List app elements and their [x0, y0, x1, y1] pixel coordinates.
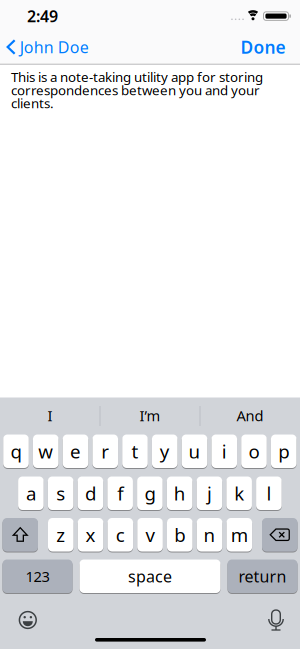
staticText: z: [56, 522, 65, 547]
button[interactable]: z: [48, 517, 74, 552]
button[interactable]: I: [2, 398, 98, 432]
button[interactable]: a: [18, 476, 44, 510]
staticText: g: [144, 481, 155, 506]
staticText: o: [248, 439, 259, 464]
staticText: t: [131, 439, 138, 464]
button[interactable]: o: [241, 434, 267, 468]
button[interactable]: [262, 517, 297, 552]
button[interactable]: j: [197, 476, 222, 510]
button[interactable]: [17, 609, 38, 630]
staticText: d: [85, 481, 96, 506]
button[interactable]: p: [271, 434, 296, 468]
staticText: w: [38, 439, 53, 464]
staticText: k: [234, 481, 244, 506]
staticText: b: [174, 522, 185, 547]
staticText: x: [85, 522, 95, 547]
staticText: y: [160, 439, 170, 464]
button[interactable]: 123: [2, 559, 72, 593]
button[interactable]: y: [152, 434, 177, 468]
staticText: This is a note-taking utility app for st…: [11, 68, 263, 86]
staticText: I’m: [139, 406, 160, 425]
staticText: r: [101, 439, 109, 464]
button[interactable]: g: [137, 476, 163, 510]
button[interactable]: e: [63, 434, 88, 468]
button[interactable]: s: [48, 476, 73, 510]
staticText: 123: [25, 566, 49, 586]
button[interactable]: c: [107, 517, 133, 552]
button[interactable]: n: [197, 517, 222, 552]
button[interactable]: l: [256, 476, 282, 510]
staticText: f: [117, 481, 123, 506]
button[interactable]: b: [167, 517, 193, 552]
staticText: i: [222, 439, 227, 464]
button[interactable]: f: [107, 476, 133, 510]
button[interactable]: [2, 517, 38, 552]
button[interactable]: i: [211, 434, 237, 468]
button[interactable]: [268, 610, 284, 631]
staticText: s: [56, 481, 65, 506]
staticText: Done: [240, 35, 285, 58]
button[interactable]: v: [137, 517, 163, 552]
staticText: h: [174, 481, 186, 506]
staticText: c: [116, 522, 125, 547]
staticText: p: [278, 439, 289, 464]
staticText: l: [266, 481, 271, 506]
staticText: I: [47, 406, 52, 425]
button[interactable]: space: [79, 559, 220, 593]
button[interactable]: And: [202, 398, 298, 432]
button[interactable]: I’m: [102, 398, 198, 432]
button[interactable]: d: [78, 476, 103, 510]
button[interactable]: h: [167, 476, 192, 510]
button[interactable]: Done: [225, 32, 285, 62]
staticText: v: [146, 522, 155, 547]
button[interactable]: r: [92, 434, 118, 468]
button[interactable]: x: [78, 517, 103, 552]
button[interactable]: k: [226, 476, 252, 510]
staticText: 2:49: [27, 5, 58, 27]
staticText: return: [238, 566, 286, 587]
staticText: clients.: [11, 94, 54, 112]
button[interactable]: return: [227, 559, 297, 593]
staticText: n: [204, 522, 216, 547]
staticText: correspondences between you and your: [11, 81, 260, 99]
staticText: j: [207, 481, 212, 506]
button[interactable]: John Doe: [8, 32, 120, 62]
button[interactable]: t: [122, 434, 148, 468]
button[interactable]: u: [182, 434, 207, 468]
staticText: a: [26, 481, 36, 506]
button[interactable]: q: [3, 434, 29, 468]
staticText: u: [188, 439, 200, 464]
button[interactable]: w: [33, 434, 59, 468]
staticText: space: [128, 566, 172, 587]
staticText: q: [10, 439, 21, 464]
staticText: John Doe: [20, 36, 89, 58]
staticText: m: [231, 522, 248, 547]
staticText: And: [236, 406, 263, 425]
staticText: e: [70, 439, 81, 464]
button[interactable]: m: [226, 517, 252, 552]
